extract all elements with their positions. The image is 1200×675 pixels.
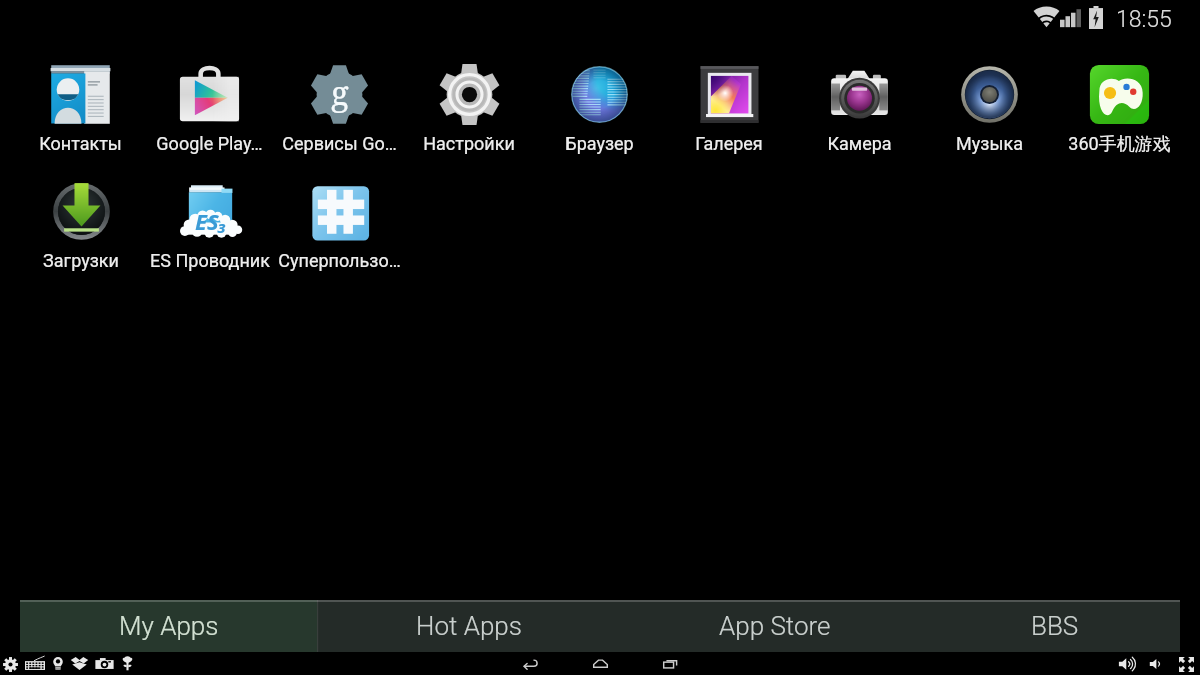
staticText: My Apps [119, 611, 219, 641]
button[interactable]: Музыка [924, 64, 1054, 181]
button[interactable]: ES₃ [145, 181, 274, 298]
button[interactable]: Контакты [16, 64, 145, 181]
staticText: Галерея [695, 133, 763, 154]
staticText: Сервисы Go… [282, 133, 397, 154]
staticText: 18:55 [1116, 6, 1172, 33]
button[interactable]: Back [495, 652, 565, 675]
button[interactable]: Settings [3, 655, 18, 672]
button[interactable]: BBS [929, 600, 1180, 652]
button[interactable]: Настройки [404, 64, 534, 181]
staticText: Загрузки [43, 250, 119, 271]
button[interactable]: Expand [1178, 656, 1195, 673]
staticText: Суперпользо… [278, 250, 401, 271]
staticText: BBS [1031, 611, 1079, 641]
button[interactable]: My Apps [20, 600, 317, 652]
button[interactable]: 360手机游戏 [1054, 64, 1184, 181]
staticText: ES₃ [195, 206, 227, 236]
staticText: Hot Apps [416, 611, 522, 641]
button[interactable]: Hot Apps [317, 600, 621, 652]
staticText: 360手机游戏 [1068, 133, 1171, 156]
button[interactable]: Screenshot [95, 655, 114, 672]
button[interactable]: Record [120, 655, 135, 672]
button[interactable]: g [274, 64, 404, 181]
staticText: Контакты [39, 133, 122, 154]
staticText: App Store [719, 611, 831, 641]
button[interactable]: Recents [635, 652, 705, 675]
button[interactable]: Загрузки [16, 181, 145, 298]
button[interactable]: Суперпользо… [274, 181, 404, 298]
button[interactable]: Volume up [1118, 655, 1136, 673]
staticText: g [331, 70, 349, 115]
button[interactable]: Home [565, 652, 635, 675]
button[interactable]: Браузер [534, 64, 664, 181]
button[interactable]: Галерея [664, 64, 794, 181]
staticText: Музыка [956, 133, 1023, 154]
button[interactable]: Google Play… [145, 64, 274, 181]
staticText: Браузер [565, 133, 634, 154]
staticText: Камера [827, 133, 892, 154]
staticText: ES Проводник [150, 250, 270, 271]
button[interactable]: App Store [621, 600, 929, 652]
staticText: Google Play… [156, 133, 263, 154]
button[interactable]: Volume down [1149, 656, 1165, 672]
button[interactable]: Dropbox [70, 655, 89, 672]
button[interactable]: Brightness [52, 655, 64, 672]
staticText: Настройки [423, 133, 515, 154]
button[interactable]: Камера [794, 64, 924, 181]
button[interactable]: Keyboard [25, 655, 45, 672]
